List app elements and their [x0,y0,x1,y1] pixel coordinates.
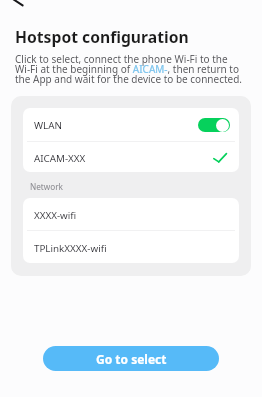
other: Selected [213,152,227,164]
staticText: Go to select [96,351,167,367]
button[interactable]: AICAM-XXX [23,142,239,172]
staticText: XXXX-wifi [34,209,77,222]
button[interactable]: TPLinkXXXX-wifi [23,231,239,263]
button[interactable]: Go to select [43,346,219,371]
staticText: TPLinkXXXX-wifi [34,242,107,255]
staticText: WLAN [34,119,62,132]
button[interactable]: Back [0,0,34,12]
staticText: Network [30,181,63,192]
staticText: Hotspot configuration [15,26,189,47]
button[interactable]: WLAN [23,108,239,141]
staticText: Click to select, connect the phone Wi-Fi… [15,52,243,86]
staticText: AICAM-XXX [34,152,86,165]
button[interactable]: XXXX-wifi [23,198,239,230]
button[interactable]: WLAN toggle [198,118,230,132]
